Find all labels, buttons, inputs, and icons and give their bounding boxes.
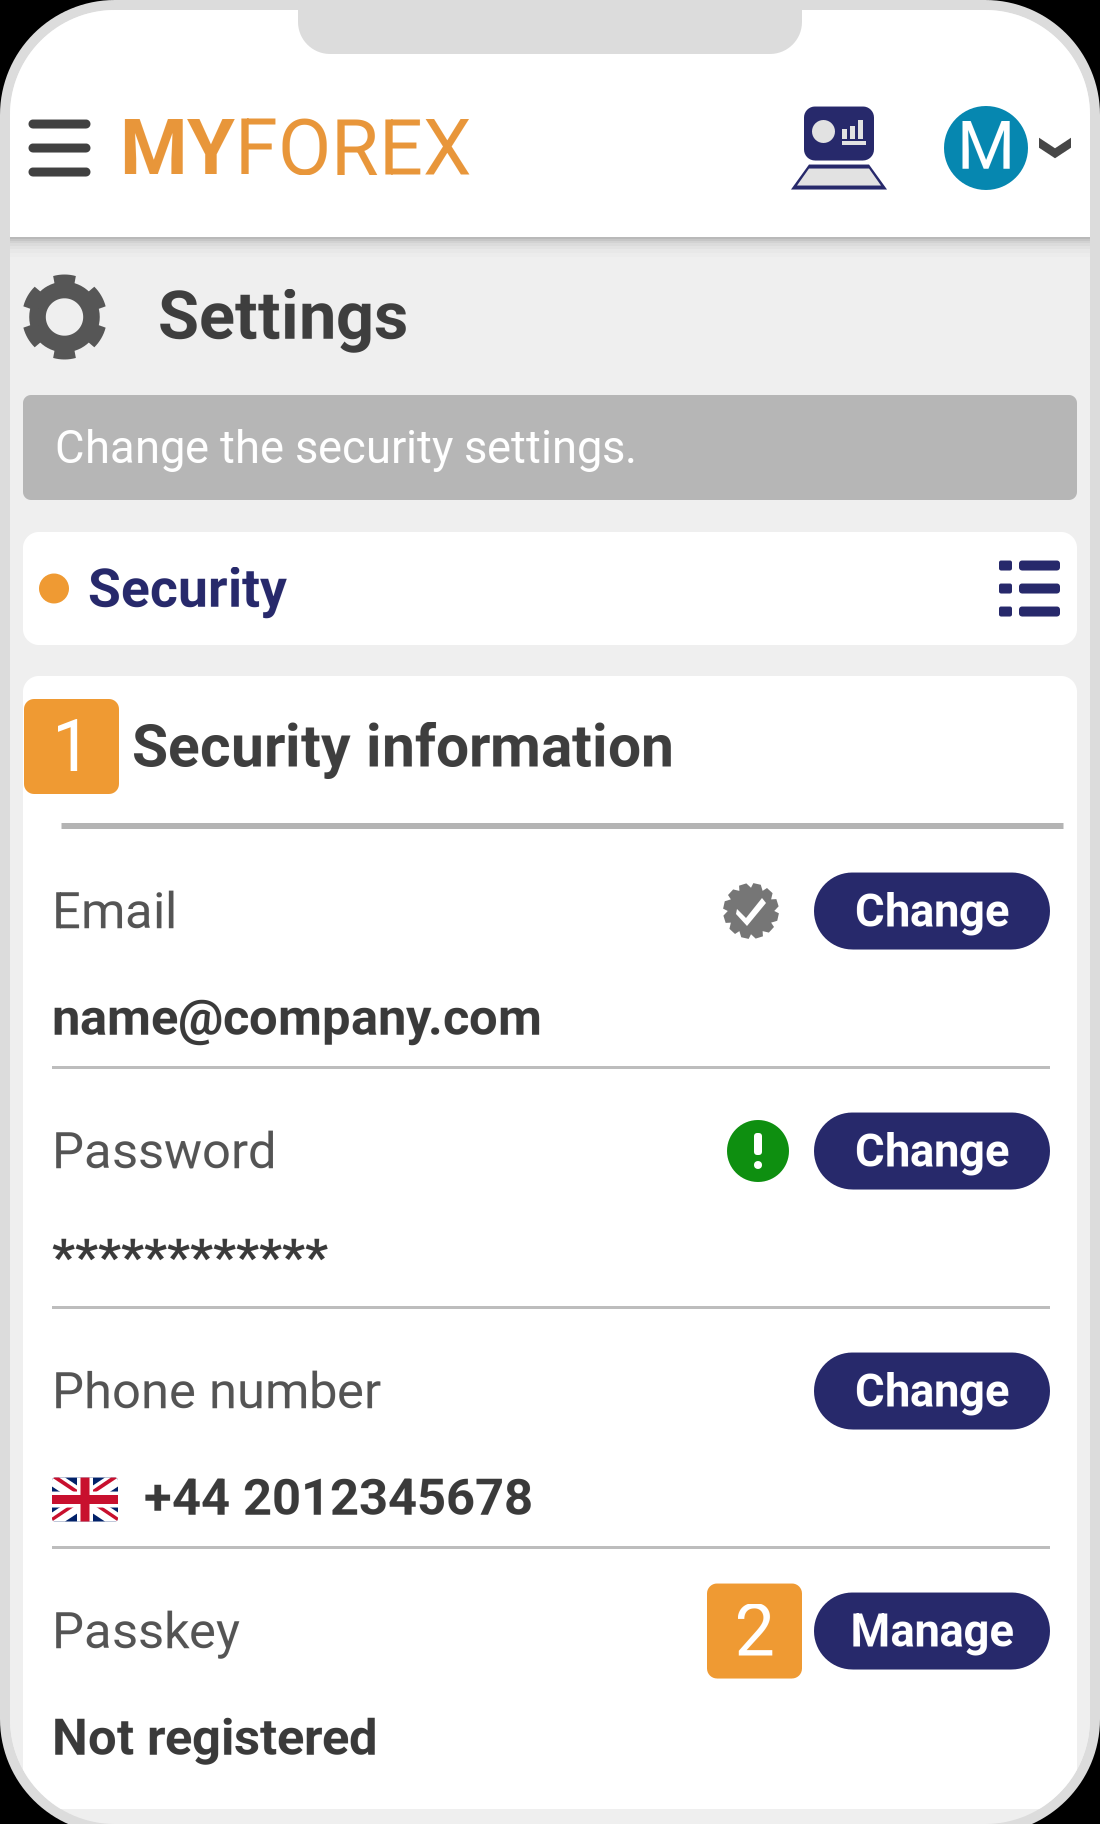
staticText: Settings <box>158 277 408 355</box>
staticText: Security <box>88 557 287 620</box>
button[interactable]: Menu <box>10 78 109 218</box>
staticText: Phone number <box>52 1361 381 1421</box>
staticText: Not registered <box>52 1708 378 1767</box>
button[interactable]: Trading platform <box>762 78 894 218</box>
staticText: FOREX <box>235 103 471 193</box>
button[interactable]: View list <box>999 560 1060 616</box>
staticText: Change <box>855 1364 1009 1417</box>
button[interactable]: Manage <box>814 1592 1050 1669</box>
staticText: Password <box>52 1121 277 1181</box>
staticText: Manage <box>850 1604 1013 1657</box>
staticText: 2 <box>734 1589 774 1673</box>
staticText: MY <box>120 103 235 193</box>
staticText: ************ <box>52 1228 328 1287</box>
staticText: name@company.com <box>52 988 542 1047</box>
staticText: Change <box>855 1124 1009 1177</box>
staticText: Email <box>52 881 177 941</box>
staticText: 1 <box>51 704 91 789</box>
button[interactable]: Change <box>814 1352 1050 1429</box>
staticText: Passkey <box>52 1601 240 1661</box>
button[interactable]: Change <box>814 1112 1050 1189</box>
button[interactable]: Account menu <box>894 78 1090 218</box>
staticText: Change <box>855 884 1009 937</box>
staticText: +44 2012345678 <box>144 1468 533 1527</box>
button[interactable]: Change <box>814 872 1050 949</box>
staticText: M <box>957 107 1015 185</box>
staticText: Change the security settings. <box>55 421 637 474</box>
staticText: Security information <box>132 712 674 781</box>
